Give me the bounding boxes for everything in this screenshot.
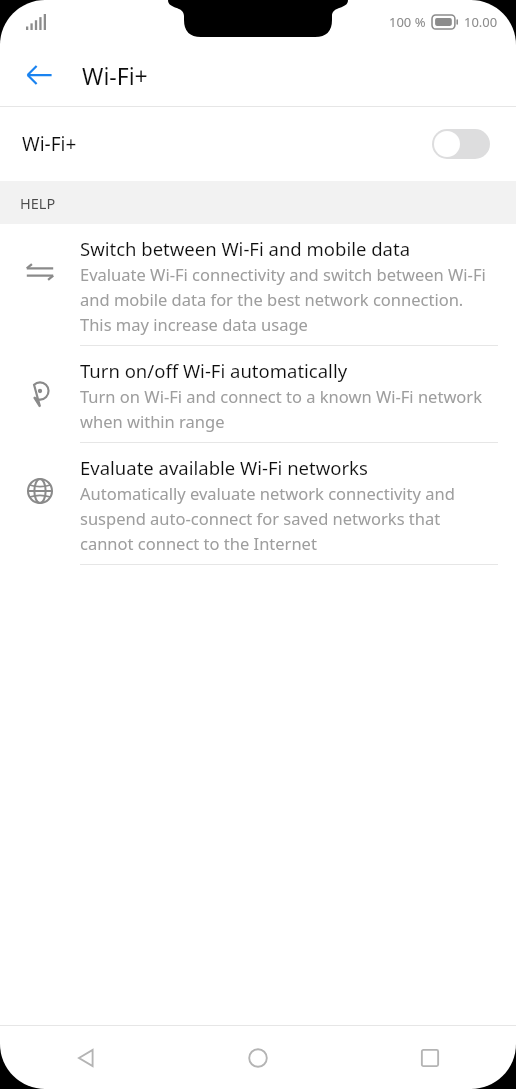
staticText: 10.00 (464, 13, 498, 31)
button[interactable]: Evaluate available Wi-Fi networks (0, 443, 516, 565)
staticText: Turn on/off Wi-Fi automatically (80, 358, 348, 383)
staticText: Wi-Fi+ (22, 131, 77, 157)
button[interactable]: Wi-Fi+ toggle (432, 129, 490, 159)
button[interactable]: Switch between Wi-Fi and mobile data (0, 224, 516, 346)
button[interactable]: Wi-Fi+ (0, 107, 516, 181)
staticText: HELP (20, 193, 56, 213)
staticText: Switch between Wi-Fi and mobile data (80, 236, 411, 261)
staticText: Turn on Wi-Fi and connect to a known Wi-… (80, 385, 498, 432)
staticText: Evaluate Wi-Fi connectivity and switch b… (80, 263, 498, 335)
button[interactable]: Turn on/off Wi-Fi automatically (0, 346, 516, 443)
button[interactable]: Back (0, 1026, 172, 1089)
button[interactable]: Back (12, 48, 66, 102)
button[interactable]: Recent apps (344, 1026, 516, 1089)
button[interactable]: Home (172, 1026, 344, 1089)
staticText: Wi-Fi+ (82, 60, 148, 91)
staticText: 100 % (389, 13, 426, 31)
staticText: Evaluate available Wi-Fi networks (80, 455, 368, 480)
staticText: Automatically evaluate network connectiv… (80, 482, 498, 554)
